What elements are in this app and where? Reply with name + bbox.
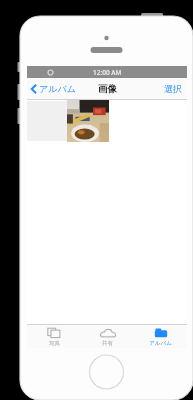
staticText: 12:00 AM — [93, 68, 122, 77]
button[interactable]: Shared — [81, 325, 134, 348]
staticText: 共有 — [102, 340, 113, 347]
button[interactable]: Photos — [27, 325, 81, 348]
button[interactable]: 選択 — [159, 78, 187, 99]
button[interactable]: アルバム — [27, 78, 82, 99]
staticText: アルバム — [149, 340, 172, 347]
staticText: アルバム — [39, 83, 76, 94]
button[interactable]: Albums — [134, 325, 187, 348]
staticText: 選択 — [164, 83, 182, 94]
staticText: 写真 — [49, 340, 60, 347]
button[interactable]: Photo thumbnail — [67, 100, 109, 142]
staticText: 画像 — [98, 83, 117, 95]
